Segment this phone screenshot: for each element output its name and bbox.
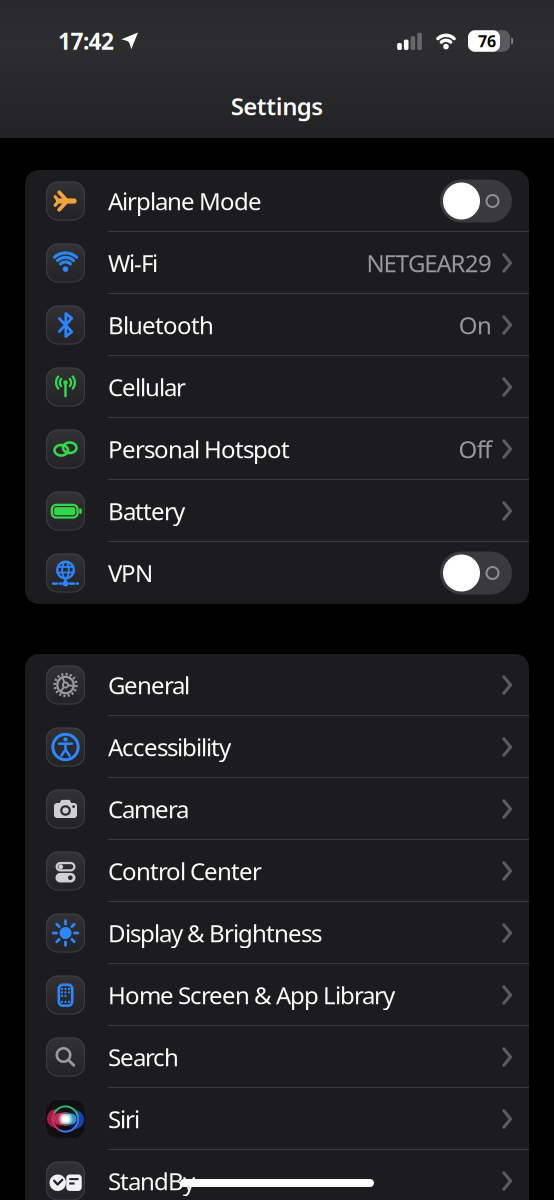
staticText: Bluetooth	[108, 309, 214, 341]
button[interactable]: Control Center	[25, 840, 529, 902]
staticText: Wi-Fi	[108, 247, 158, 279]
staticText: Siri	[108, 1103, 140, 1135]
button[interactable]: StandBy	[25, 1150, 529, 1200]
staticText: Off	[459, 433, 492, 465]
staticText: Home Screen & App Library	[108, 979, 395, 1011]
staticText: Personal Hotspot	[108, 433, 290, 465]
staticText: Search	[108, 1041, 179, 1073]
staticText: 17:42	[58, 26, 114, 56]
button[interactable]: General	[25, 654, 529, 716]
button[interactable]: Home Screen & App Library	[25, 964, 529, 1026]
staticText: Airplane Mode	[108, 185, 262, 217]
button[interactable]: VPN	[440, 551, 512, 594]
staticText: General	[108, 669, 190, 701]
button[interactable]: Display & Brightness	[25, 902, 529, 964]
button[interactable]: Cellular	[25, 356, 529, 418]
staticText: Accessibility	[108, 731, 231, 763]
button[interactable]: Wi-Fi	[25, 232, 529, 294]
staticText: StandBy	[108, 1165, 195, 1197]
staticText: On	[459, 309, 492, 341]
staticText: NETGEAR29	[366, 247, 492, 279]
button[interactable]: Battery	[25, 480, 529, 542]
staticText: VPN	[108, 557, 153, 589]
button[interactable]: Search	[25, 1026, 529, 1088]
button[interactable]: Personal Hotspot	[25, 418, 529, 480]
staticText: Control Center	[108, 855, 262, 887]
button[interactable]: Bluetooth	[25, 294, 529, 356]
staticText: Battery	[108, 495, 185, 527]
staticText: Display & Brightness	[108, 917, 322, 949]
button[interactable]: Accessibility	[25, 716, 529, 778]
button[interactable]: Camera	[25, 778, 529, 840]
staticText: Cellular	[108, 371, 186, 403]
staticText: Camera	[108, 793, 189, 825]
button[interactable]: Siri	[25, 1088, 529, 1150]
staticText: Settings	[231, 90, 323, 122]
staticText: 76	[478, 30, 496, 52]
button[interactable]: Airplane Mode	[440, 179, 512, 222]
